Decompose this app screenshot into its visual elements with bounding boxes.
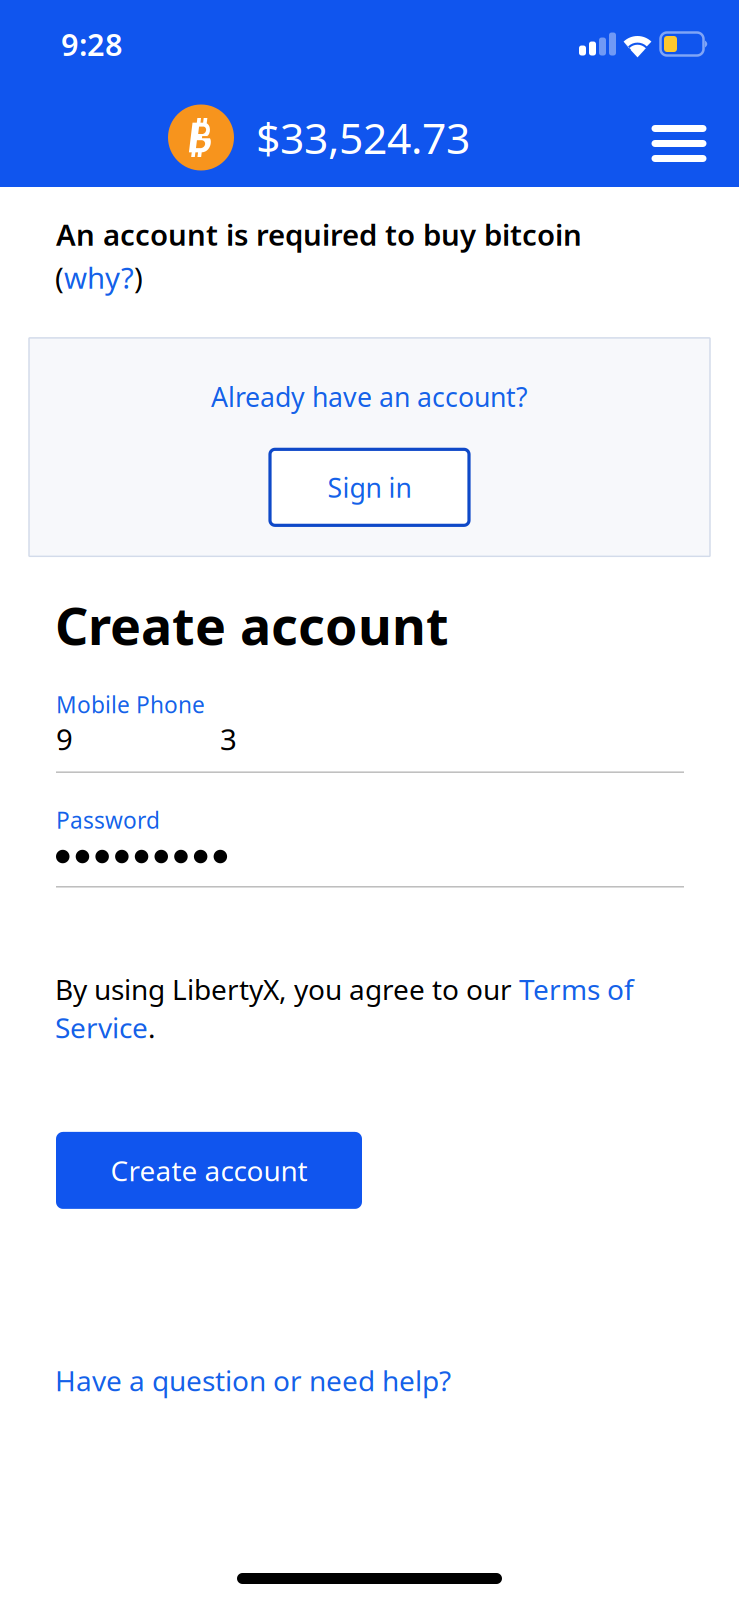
staticText: Create account	[110, 1152, 307, 1189]
staticText: Mobile Phone	[56, 689, 205, 719]
staticText: 9	[56, 719, 73, 758]
button[interactable]: why?	[64, 258, 134, 297]
button[interactable]: Menu	[635, 88, 723, 187]
button[interactable]: Terms of	[519, 970, 634, 1008]
staticText: Terms of	[519, 970, 634, 1008]
staticText: $33,524.73	[256, 109, 470, 166]
staticText: An account is required to buy bitcoin	[56, 215, 582, 254]
staticText: 3	[220, 719, 237, 758]
staticText: why?	[64, 258, 134, 297]
staticText: (	[55, 258, 64, 297]
staticText: Already have an account?	[211, 379, 528, 414]
staticText: Service	[55, 1009, 148, 1046]
staticText: Password	[56, 805, 160, 835]
button[interactable]: Sign in	[270, 449, 469, 525]
staticText: Create account	[55, 590, 449, 659]
staticText: Sign in	[327, 470, 411, 505]
button[interactable]: Create account	[56, 1132, 362, 1209]
button[interactable]: Service	[55, 1009, 148, 1046]
staticText: 9:28	[61, 24, 123, 64]
staticText: Have a question or need help?	[55, 1362, 451, 1399]
staticText: By using LibertyX, you agree to our	[55, 970, 519, 1008]
staticText: .	[148, 1009, 156, 1046]
button[interactable]: Have a question or need help?	[55, 1362, 451, 1399]
staticText: )	[134, 258, 143, 297]
